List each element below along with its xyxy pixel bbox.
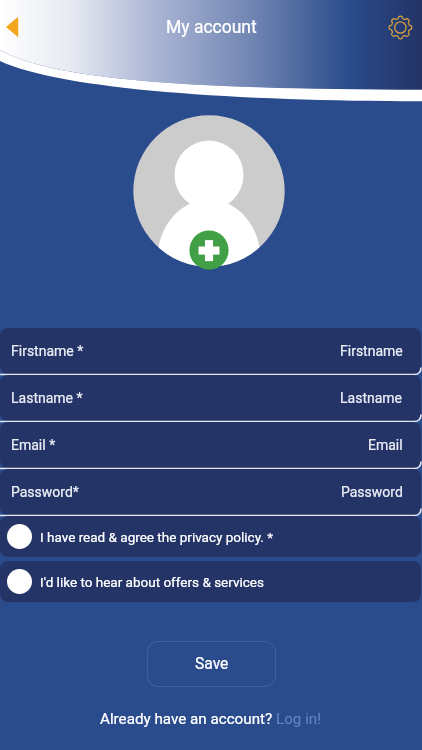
staticText: Email * (11, 437, 56, 453)
staticText: Firstname (340, 343, 403, 359)
button[interactable]: Settings (375, 2, 422, 53)
button[interactable]: Back (0, 0, 44, 44)
staticText: Lastname * (11, 390, 83, 406)
staticText: My account (166, 17, 257, 38)
button[interactable]: I have read & agree the privacy policy. … (0, 516, 421, 557)
button[interactable]: Password* (0, 469, 421, 515)
button[interactable]: I'd like to hear about offers & services (0, 561, 421, 602)
button[interactable]: Firstname * (0, 328, 421, 374)
button[interactable]: Email * (0, 422, 421, 468)
staticText: Save (195, 655, 229, 673)
staticText: I have read & agree the privacy policy. … (40, 529, 274, 545)
staticText: Password* (11, 484, 79, 500)
staticText: Already have an account? (100, 710, 276, 728)
staticText: Firstname * (11, 343, 84, 359)
staticText: Password (341, 484, 403, 500)
button[interactable]: Save (147, 641, 276, 687)
button[interactable]: Log in! (276, 710, 322, 728)
staticText: Email (368, 437, 403, 453)
staticText: Lastname (340, 390, 403, 406)
button[interactable]: Lastname * (0, 375, 421, 421)
staticText: I'd like to hear about offers & services (40, 574, 264, 590)
